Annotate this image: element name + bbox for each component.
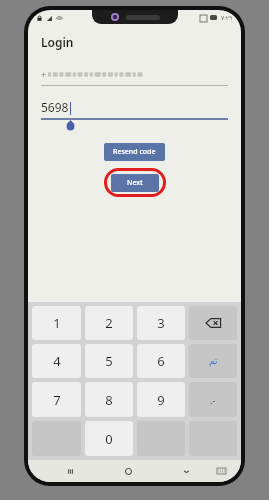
staticText: 2 — [105, 314, 113, 332]
button[interactable]: 8 — [85, 382, 133, 417]
button[interactable]: 4 — [32, 344, 81, 378]
staticText: تم — [209, 356, 218, 366]
staticText: 5698 — [41, 99, 69, 115]
button[interactable]: Hide keyboard — [157, 460, 215, 482]
button[interactable]: Recents — [42, 460, 99, 482]
staticText: 3 — [157, 314, 165, 332]
button[interactable]: Home — [99, 460, 157, 482]
staticText: 4 — [53, 352, 61, 370]
staticText: Login — [41, 34, 74, 50]
button[interactable]: Done — [189, 344, 237, 378]
button[interactable]: 3 — [137, 306, 185, 340]
staticText: 7 — [53, 391, 61, 409]
button[interactable]: Next — [111, 174, 159, 192]
button[interactable]: 2 — [85, 306, 133, 340]
button[interactable]: 9 — [137, 382, 185, 417]
staticText: Next — [127, 178, 143, 188]
staticText: + — [41, 68, 47, 80]
staticText: 1 — [53, 314, 61, 332]
staticText: Resend code — [113, 147, 156, 157]
button[interactable]: Symbols — [189, 382, 237, 417]
button[interactable]: 1 — [32, 306, 81, 340]
button[interactable]: Resend code — [104, 143, 165, 161]
staticText: .- — [210, 394, 216, 406]
staticText: 6 — [157, 352, 165, 370]
button[interactable]: 0 — [85, 421, 133, 456]
button[interactable]: 6 — [137, 344, 185, 378]
staticText: 0 — [105, 430, 113, 448]
button[interactable]: Backspace — [189, 306, 237, 340]
button[interactable]: 7 — [32, 382, 81, 417]
staticText: 5 — [105, 352, 113, 370]
staticText: 8 — [105, 391, 113, 409]
button[interactable]: 5 — [85, 344, 133, 378]
button[interactable]: Change keyboard — [215, 460, 227, 482]
staticText: ٧:٢٩ — [221, 14, 233, 22]
staticText: 9 — [157, 391, 165, 409]
